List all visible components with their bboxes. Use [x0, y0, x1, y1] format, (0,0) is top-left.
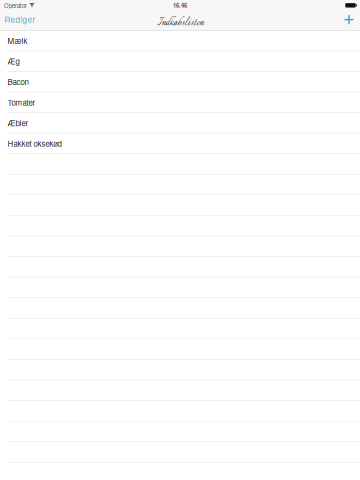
staticText: Tomater [8, 97, 36, 108]
button[interactable]: Hakket oksekød [0, 133, 360, 154]
staticText: Indkøbslisten [156, 14, 203, 31]
button[interactable]: Bacon [0, 72, 360, 92]
staticText: Hakket oksekød [8, 138, 62, 149]
staticText: Rediger [4, 13, 35, 25]
staticText: Mælk [8, 35, 28, 46]
button[interactable]: Tomater [0, 92, 360, 113]
staticText: Bacon [8, 76, 29, 87]
button[interactable]: Æg [0, 51, 360, 72]
staticText: 16.46 [173, 1, 187, 9]
button[interactable]: Tilføj vare [337, 12, 360, 30]
button[interactable]: Rediger [0, 12, 42, 30]
button[interactable]: Æbler [0, 113, 360, 133]
button[interactable]: Mælk [0, 31, 360, 51]
staticText: Operator [4, 1, 27, 9]
staticText: Æbler [8, 117, 29, 128]
staticText: Æg [8, 55, 20, 67]
